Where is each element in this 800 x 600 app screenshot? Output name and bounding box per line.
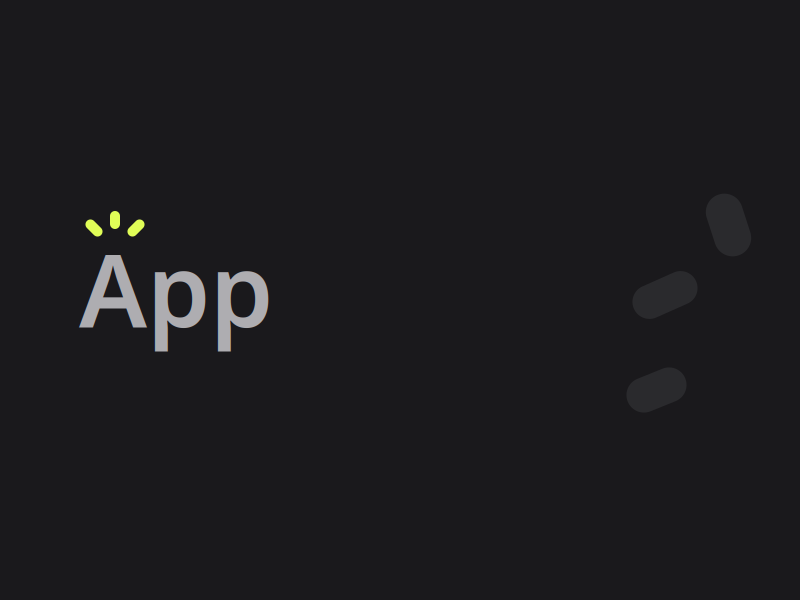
staticText: App [79,221,273,356]
